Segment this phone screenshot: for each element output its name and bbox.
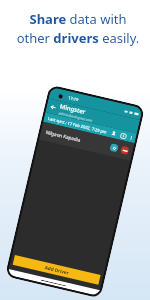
staticText: Add Driver <box>44 264 70 276</box>
staticText: Mingster <box>59 102 86 116</box>
button[interactable]: Share location <box>109 143 119 152</box>
button[interactable]: Nilgaon Kapadia <box>39 122 134 161</box>
button[interactable]: Back <box>49 103 57 111</box>
staticText: admin@mingster.com <box>58 110 93 123</box>
staticText: 17:19 <box>68 95 80 102</box>
button[interactable]: More options <box>128 135 134 141</box>
button[interactable]: Add Driver <box>13 255 101 285</box>
staticText: Last sync : 17 Feb 2022, 7:29 pm <box>47 116 108 135</box>
staticText: Nilgaon Kapadia <box>45 129 82 143</box>
staticText: other drivers easily. <box>3 29 150 47</box>
button[interactable]: People <box>109 130 118 138</box>
button[interactable]: Remove driver <box>120 145 129 155</box>
button[interactable]: Contact card <box>119 132 128 140</box>
staticText: Share data with <box>3 10 150 28</box>
